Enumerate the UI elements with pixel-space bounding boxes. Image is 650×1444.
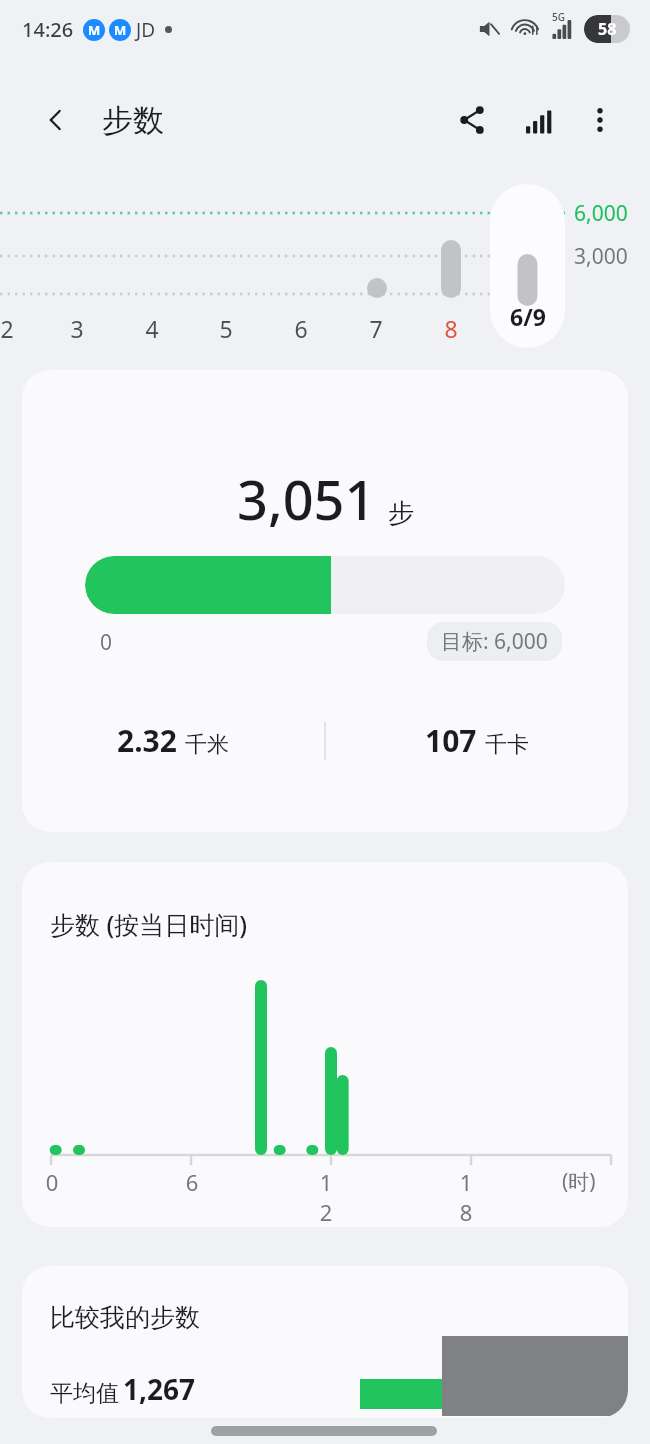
staticText: 6/9 <box>510 301 546 332</box>
button[interactable]: 6/9 <box>490 184 565 348</box>
button[interactable]: 比较我的步数 <box>22 1266 628 1418</box>
button[interactable]: Back <box>34 98 78 142</box>
staticText: 4 <box>145 313 159 344</box>
staticText: JD <box>136 17 156 43</box>
staticText: 7 <box>369 313 383 344</box>
button[interactable]: More options <box>576 96 624 144</box>
staticText: 0 <box>40 1167 64 1197</box>
staticText: (时) <box>562 1167 596 1196</box>
staticText: 步数 (按当日时间) <box>50 907 248 941</box>
staticText: 3 <box>70 313 84 344</box>
staticText: 12 <box>314 1167 338 1227</box>
staticText: 2.32 <box>117 720 177 761</box>
staticText: M <box>114 21 127 39</box>
button[interactable]: 目标: 6,000 <box>441 627 548 656</box>
button[interactable]: 步数 (按当日时间) <box>22 862 628 1227</box>
staticText: 6 <box>294 313 308 344</box>
staticText: 8 <box>444 313 458 344</box>
staticText: 平均值 <box>50 1379 119 1408</box>
staticText: 步数 <box>102 101 164 140</box>
staticText: 千卡 <box>485 731 529 759</box>
staticText: 107 <box>425 720 477 761</box>
staticText: 18 <box>454 1167 478 1227</box>
staticText: 2 <box>0 313 14 344</box>
staticText: 比较我的步数 <box>50 1302 200 1333</box>
button[interactable]: Share <box>448 96 496 144</box>
staticText: M <box>88 21 101 39</box>
staticText: 3,000 <box>574 242 628 271</box>
staticText: 58 <box>598 18 617 40</box>
staticText: 千米 <box>185 731 229 759</box>
staticText: 5G <box>552 10 565 24</box>
staticText: 步 <box>388 497 414 530</box>
staticText: 3,051 <box>237 462 376 536</box>
button[interactable]: 3,051 <box>22 370 628 832</box>
staticText: 14:26 <box>22 16 74 43</box>
staticText: 5 <box>219 313 233 344</box>
staticText: 1,267 <box>123 1370 196 1408</box>
button[interactable]: Chart <box>514 96 562 144</box>
staticText: 6 <box>180 1167 204 1197</box>
staticText: 6,000 <box>574 199 628 228</box>
staticText: 目标: 6,000 <box>441 627 548 656</box>
staticText: 0 <box>100 628 113 657</box>
